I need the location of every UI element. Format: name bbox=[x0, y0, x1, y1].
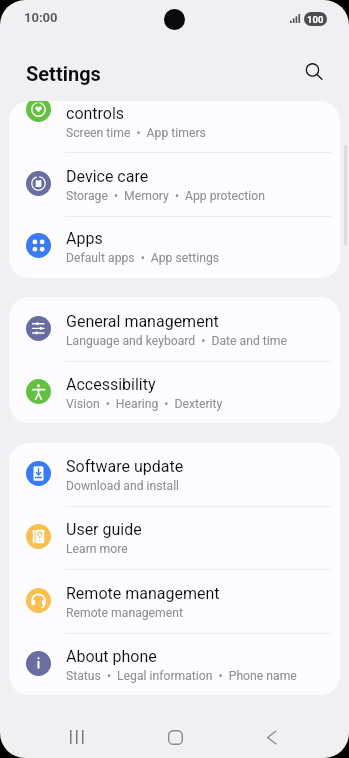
staticText: Software update bbox=[66, 457, 184, 476]
button[interactable]: General management bbox=[9, 298, 340, 362]
button[interactable]: Remote management bbox=[9, 570, 340, 634]
staticText: Accessibility bbox=[66, 375, 156, 394]
staticText: Default apps • App settings bbox=[66, 251, 220, 265]
button[interactable]: Back bbox=[249, 714, 295, 758]
button[interactable]: controls bbox=[9, 101, 340, 154]
staticText: Remote management bbox=[66, 606, 183, 620]
staticText: Learn more bbox=[66, 542, 128, 556]
button[interactable]: User guide bbox=[9, 506, 340, 570]
button[interactable]: Apps bbox=[9, 215, 340, 278]
staticText: 10:00 bbox=[24, 10, 58, 25]
staticText: 100 bbox=[307, 14, 324, 25]
staticText: controls bbox=[66, 104, 125, 123]
staticText: Screen time • App timers bbox=[66, 126, 206, 140]
staticText: About phone bbox=[66, 647, 157, 666]
staticText: General management bbox=[66, 312, 219, 331]
staticText: Device care bbox=[66, 167, 149, 186]
button[interactable]: Home bbox=[152, 714, 198, 758]
button[interactable]: Recents bbox=[54, 714, 100, 758]
staticText: Apps bbox=[66, 229, 103, 248]
button[interactable]: About phone bbox=[9, 633, 340, 695]
staticText: Status • Legal information • Phone name bbox=[66, 669, 297, 683]
button[interactable]: Accessibility bbox=[9, 361, 340, 423]
staticText: Storage • Memory • App protection bbox=[66, 189, 265, 203]
staticText: Download and install bbox=[66, 479, 180, 493]
button[interactable]: Search bbox=[298, 55, 331, 88]
staticText: Vision • Hearing • Dexterity bbox=[66, 397, 223, 411]
staticText: Settings bbox=[26, 62, 101, 85]
button[interactable]: Software update bbox=[9, 443, 340, 507]
staticText: Remote management bbox=[66, 584, 220, 603]
staticText: Language and keyboard • Date and time bbox=[66, 334, 287, 348]
staticText: User guide bbox=[66, 520, 142, 539]
button[interactable]: Device care bbox=[9, 153, 340, 217]
